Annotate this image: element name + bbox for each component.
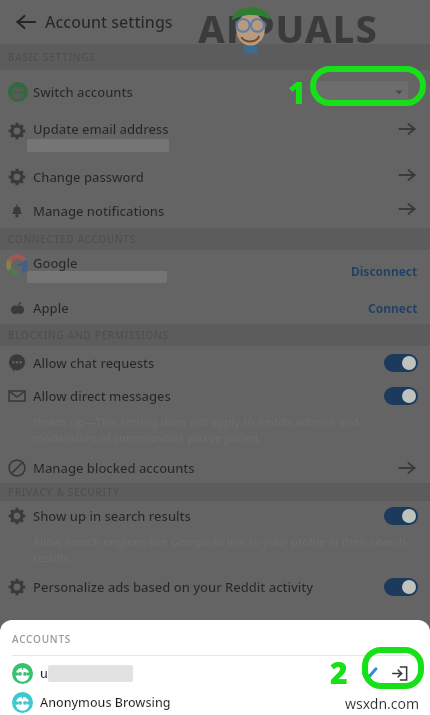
staticText: Connect <box>368 300 418 316</box>
staticText: BLOCKING AND PERMISSIONS <box>8 328 169 342</box>
staticText: APPUALS <box>198 2 378 54</box>
staticText: Account settings <box>45 11 173 33</box>
button[interactable]: Apple <box>0 292 430 324</box>
button[interactable]: Toggle <box>384 578 418 596</box>
staticText: Manage notifications <box>33 202 165 220</box>
staticText: CONNECTED ACCOUNTS <box>8 232 136 246</box>
staticText: wsxdn.com <box>345 694 420 713</box>
button[interactable]: Toggle <box>384 507 418 525</box>
other: Open <box>398 120 416 138</box>
staticText: Anonymous Browsing <box>40 694 171 711</box>
button[interactable]: Show up in search results <box>0 501 430 531</box>
staticText: Allow direct messages <box>33 387 171 405</box>
staticText: Show up in search results <box>33 507 191 525</box>
button[interactable]: u. <box>0 656 430 690</box>
button[interactable]: Allow chat requests <box>0 346 430 380</box>
button[interactable]: Change password <box>0 160 430 194</box>
staticText: Apple <box>33 299 69 317</box>
other: Open <box>398 459 416 477</box>
staticText: Personalize ads based on your Reddit act… <box>33 578 314 596</box>
staticText: 1 <box>288 72 306 113</box>
staticText: Switch accounts <box>33 83 133 101</box>
staticText: Allow chat requests <box>33 354 155 372</box>
button[interactable]: Google <box>0 250 430 292</box>
staticText: BASIC SETTINGS <box>8 50 96 64</box>
button[interactable]: Update email address <box>0 114 430 160</box>
staticText: Manage blocked accounts <box>33 459 195 477</box>
staticText: Change password <box>33 168 144 186</box>
button[interactable]: Toggle <box>384 354 418 372</box>
button[interactable]: Manage notifications <box>0 194 430 228</box>
button[interactable]: Back <box>8 4 44 40</box>
other: Open <box>398 166 416 184</box>
staticText: Update email address <box>33 120 169 138</box>
button[interactable]: Personalize ads based on your Reddit act… <box>0 573 430 601</box>
staticText: PRIVACY & SECURITY <box>8 485 120 499</box>
button[interactable]: Toggle <box>384 387 418 405</box>
other: Open <box>398 200 416 218</box>
button[interactable]: Manage blocked accounts <box>0 453 430 483</box>
staticText: Google <box>33 254 78 272</box>
button[interactable]: Allow direct messages <box>0 380 430 412</box>
staticText: Disconnect <box>351 263 418 279</box>
button[interactable]: Log out <box>391 665 408 682</box>
button[interactable]: Switch accounts <box>0 70 430 114</box>
staticText: ACCOUNTS <box>12 632 72 646</box>
button[interactable]: Anonymous Browsing <box>0 690 430 715</box>
staticText: 2 <box>330 652 348 693</box>
staticText: u. <box>40 665 52 682</box>
button[interactable]: Selected account <box>361 665 378 682</box>
